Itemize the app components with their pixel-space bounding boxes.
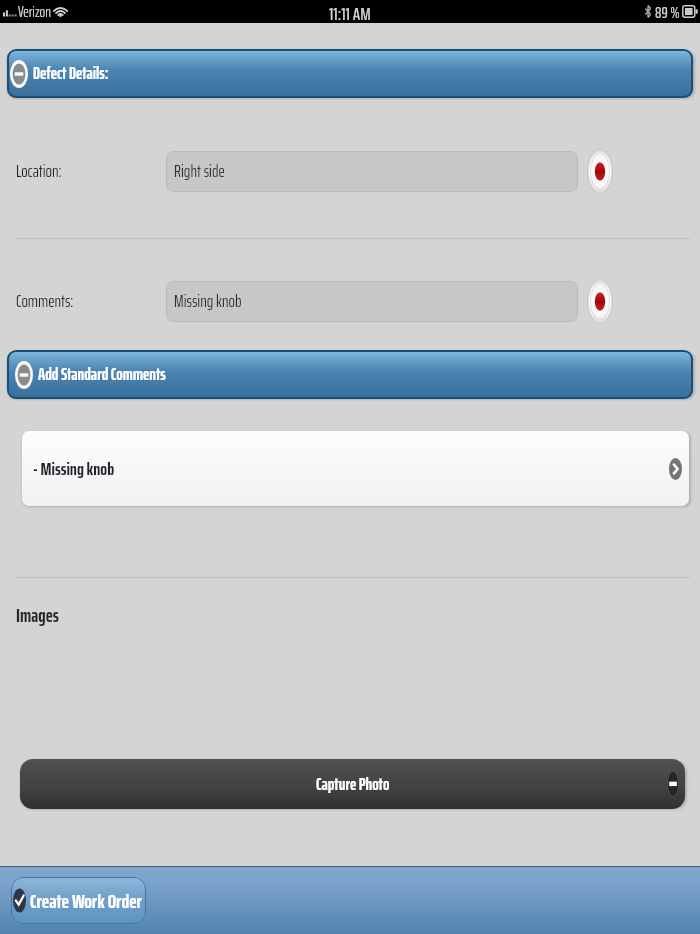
button[interactable]: Create Work Order: [11, 877, 146, 924]
staticText: Defect Details:: [33, 60, 109, 87]
button[interactable]: Capture Photo: [20, 759, 685, 809]
staticText: Capture Photo: [316, 771, 390, 798]
staticText: - Missing knob: [33, 455, 115, 483]
button[interactable]: Right side: [166, 151, 578, 192]
button[interactable]: Defect Details:: [7, 49, 693, 98]
button[interactable]: Add Standard Comments: [7, 350, 693, 399]
staticText: Missing knob: [174, 288, 242, 315]
staticText: Comments:: [16, 288, 74, 315]
button[interactable]: Record voice note: [587, 279, 613, 324]
staticText: Create Work Order: [30, 885, 143, 916]
staticText: Add Standard Comments: [38, 361, 166, 388]
staticText: 89 %: [655, 0, 680, 23]
staticText: Verizon: [18, 0, 52, 23]
staticText: Location:: [16, 158, 62, 185]
staticText: Right side: [174, 158, 225, 185]
staticText: 11:11 AM: [329, 0, 371, 23]
button[interactable]: Record voice note: [587, 149, 613, 194]
staticText: Images: [16, 600, 59, 630]
button[interactable]: - Missing knob: [22, 431, 689, 506]
button[interactable]: Missing knob: [166, 281, 578, 322]
